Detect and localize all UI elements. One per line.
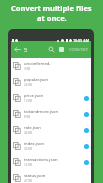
staticText: 24 KB: [24, 83, 33, 87]
button[interactable]: CONVERT: [68, 47, 90, 53]
staticText: Convert multiple files: [11, 3, 92, 13]
button[interactable]: Search: [47, 45, 56, 54]
staticText: 3 KB: [24, 67, 31, 71]
button[interactable]: status.json: [11, 170, 91, 183]
button[interactable]: popular.json: [11, 74, 91, 90]
button[interactable]: Select folder: [57, 45, 66, 54]
staticText: CONVERT: [69, 47, 89, 53]
button[interactable]: tickandmore.json: [11, 106, 91, 122]
button[interactable]: Selected: [84, 144, 89, 149]
staticText: 5: [24, 46, 28, 53]
staticText: unconfirmed-transactions.json: [24, 61, 84, 67]
staticText: 13 KB: [24, 99, 33, 103]
button[interactable]: Back: [13, 45, 22, 54]
staticText: index.json: [24, 141, 45, 147]
staticText: price.json: [24, 93, 44, 99]
staticText: tickandmore.json: [24, 109, 59, 115]
staticText: 44 KB: [24, 131, 33, 135]
button[interactable]: index.json: [11, 138, 91, 154]
button[interactable]: transactions.json: [11, 154, 91, 170]
staticText: 30 KB: [24, 147, 33, 151]
staticText: transactions.json: [24, 157, 58, 163]
button[interactable]: unconfirmed-transactions.json: [11, 58, 91, 74]
button[interactable]: role.json: [11, 122, 91, 138]
staticText: at once.: [37, 13, 67, 23]
button[interactable]: Selected: [84, 128, 89, 133]
staticText: role.json: [24, 125, 41, 131]
staticText: popular.json: [24, 77, 49, 83]
staticText: 10:05 AM: [73, 38, 90, 43]
button[interactable]: price.json: [11, 90, 91, 106]
button[interactable]: Selected: [84, 112, 89, 117]
staticText: 14 KB: [24, 163, 33, 167]
button[interactable]: Selected: [84, 96, 89, 101]
staticText: status.json: [24, 173, 46, 179]
staticText: 8 KB: [24, 115, 31, 119]
staticText: 47 KB: [24, 179, 33, 183]
button[interactable]: Selected: [84, 160, 89, 165]
